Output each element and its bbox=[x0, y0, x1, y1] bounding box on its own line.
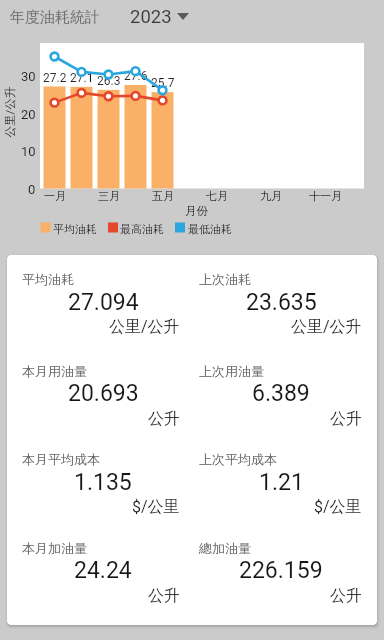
staticText: 上次油耗 bbox=[199, 271, 251, 287]
staticText: 最高油耗 bbox=[120, 222, 164, 236]
staticText: 公升 bbox=[148, 409, 180, 429]
staticText: 226.159 bbox=[239, 557, 323, 584]
staticText: 27.1 bbox=[70, 71, 94, 85]
staticText: 公升 bbox=[330, 409, 362, 429]
staticText: 6.389 bbox=[252, 380, 310, 407]
staticText: 十一月 bbox=[309, 189, 342, 203]
staticText: 26.3 bbox=[97, 74, 121, 88]
staticText: 本月加油量 bbox=[22, 540, 87, 556]
staticText: 公升 bbox=[330, 586, 362, 606]
staticText: 一月 bbox=[44, 189, 66, 203]
staticText: 本月用油量 bbox=[22, 363, 87, 379]
staticText: 最低油耗 bbox=[188, 222, 232, 236]
staticText: 25.7 bbox=[151, 76, 175, 90]
staticText: 20.693 bbox=[68, 380, 139, 407]
staticText: 2023 bbox=[130, 6, 172, 28]
staticText: 七月 bbox=[206, 189, 228, 203]
staticText: 三月 bbox=[98, 189, 120, 203]
staticText: 20 bbox=[21, 107, 36, 122]
staticText: 23.635 bbox=[246, 289, 317, 316]
staticText: $/公里 bbox=[132, 497, 180, 517]
staticText: 上次平均成本 bbox=[199, 451, 277, 467]
staticText: 公里/公升 bbox=[291, 317, 362, 337]
staticText: 10 bbox=[21, 144, 36, 159]
staticText: $/公里 bbox=[314, 497, 362, 517]
staticText: 公里/公升 bbox=[109, 317, 180, 337]
staticText: 1.21 bbox=[259, 469, 304, 496]
staticText: 1.135 bbox=[74, 469, 132, 496]
staticText: 公升 bbox=[148, 586, 180, 606]
staticText: 0 bbox=[28, 182, 36, 197]
staticText: 24.24 bbox=[74, 557, 132, 584]
staticText: 上次用油量 bbox=[199, 363, 264, 379]
staticText: 年度油耗統計 bbox=[10, 8, 100, 27]
staticText: 總加油量 bbox=[199, 540, 251, 556]
staticText: 平均油耗 bbox=[53, 222, 97, 236]
staticText: 27.6 bbox=[124, 69, 148, 83]
staticText: 本月平均成本 bbox=[22, 451, 100, 467]
staticText: 月份 bbox=[185, 204, 208, 218]
button[interactable]: 2023 bbox=[130, 6, 189, 28]
staticText: 五月 bbox=[152, 189, 174, 203]
staticText: 27.094 bbox=[68, 289, 139, 316]
staticText: 27.2 bbox=[43, 71, 67, 85]
staticText: 九月 bbox=[260, 189, 282, 203]
staticText: 公里/公升 bbox=[2, 86, 16, 137]
staticText: 30 bbox=[21, 69, 36, 84]
staticText: 平均油耗 bbox=[22, 271, 74, 287]
